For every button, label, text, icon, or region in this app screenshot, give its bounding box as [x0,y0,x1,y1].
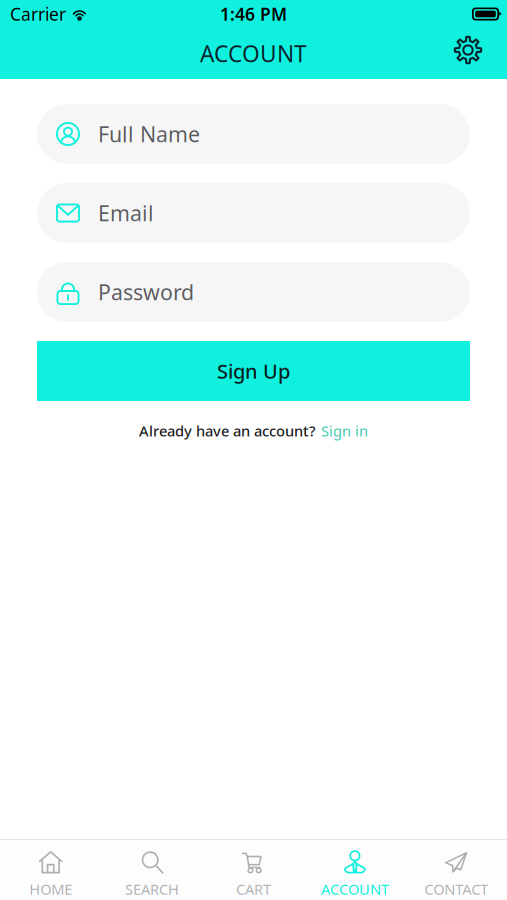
staticText: Sign in [321,421,368,440]
button[interactable]: Sign in [321,421,368,440]
staticText: CART [236,879,271,899]
button[interactable]: HOME [0,838,101,900]
button[interactable]: SEARCH [101,838,203,900]
staticText: ACCOUNT [321,879,389,899]
staticText: CONTACT [424,879,488,899]
button[interactable]: Sign Up [37,341,470,401]
staticText: HOME [29,879,72,899]
button[interactable]: CART [203,838,304,900]
staticText: 1:46 PM [220,2,287,25]
staticText: Carrier [10,2,66,25]
staticText: Sign Up [217,358,290,384]
staticText: Already have an account? [139,421,316,440]
staticText: Email [98,199,154,227]
staticText: ACCOUNT [200,38,307,68]
staticText: Full Name [98,120,200,148]
button[interactable]: Settings [446,31,490,75]
staticText: Password [98,278,194,306]
staticText: SEARCH [125,879,179,899]
button[interactable]: CONTACT [406,838,507,900]
button[interactable]: ACCOUNT [304,838,406,900]
